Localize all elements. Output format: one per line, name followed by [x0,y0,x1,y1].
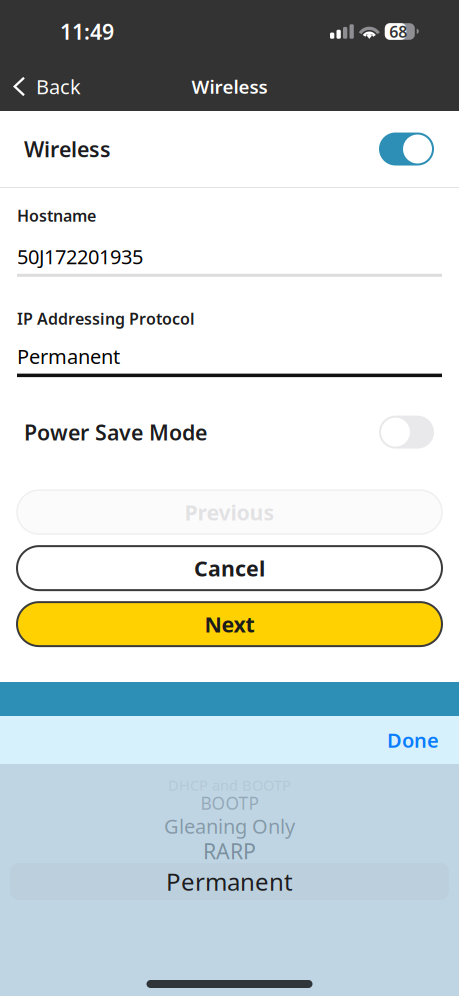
button[interactable] [379,132,434,165]
staticText: RARP [203,837,256,865]
staticText: Wireless [24,135,111,163]
button[interactable]: Next [17,602,442,646]
staticText: 11:49 [60,17,114,46]
staticText: Permanent [17,343,120,370]
staticText: 50J172201935 [17,243,143,270]
staticText: Cancel [194,554,265,582]
button[interactable]: Cancel [17,546,442,590]
staticText: Done [387,727,439,753]
staticText: IP Addressing Protocol [17,308,195,329]
staticText: Next [204,610,254,638]
staticText: Back [36,73,81,100]
staticText: Permanent [166,866,293,897]
button[interactable]: Done [367,716,459,764]
staticText: Hostname [17,205,96,226]
staticText: Power Save Mode [24,418,207,446]
staticText: DHCP and BOOTP [168,775,291,795]
button[interactable]: Back [0,62,94,110]
staticText: Wireless [191,74,267,99]
staticText: Gleaning Only [164,813,295,839]
staticText: Previous [184,498,274,526]
button[interactable] [379,416,434,449]
staticText: BOOTP [200,791,258,814]
button[interactable]: Previous [17,490,442,534]
staticText: 68 [389,21,407,42]
